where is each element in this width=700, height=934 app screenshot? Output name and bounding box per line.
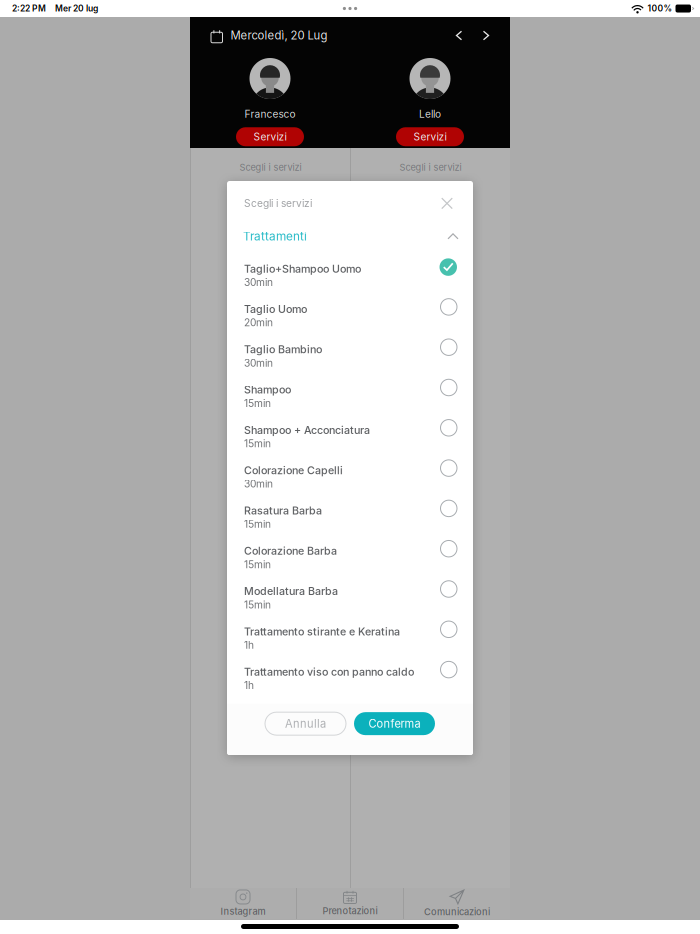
button[interactable]: Trattamenti xyxy=(227,225,473,247)
staticText: 15min xyxy=(244,518,271,530)
button[interactable]: Giorno precedente xyxy=(450,26,468,44)
staticText: Mer 20 lug xyxy=(55,3,98,14)
staticText: Scegli i servizi xyxy=(244,197,312,209)
staticText: Shampoo + Acconciatura xyxy=(244,423,370,436)
staticText: Prenotazioni xyxy=(322,905,377,916)
button[interactable]: Taglio+Shampoo Uomo xyxy=(227,252,473,293)
staticText: Shampoo xyxy=(244,383,291,396)
staticText: Taglio+Shampoo Uomo xyxy=(244,262,361,275)
button[interactable]: Rasatura Barba xyxy=(227,494,473,534)
button[interactable]: Servizi xyxy=(396,127,464,146)
staticText: Trattamento stirante e Keratina xyxy=(244,625,400,638)
staticText: 30min xyxy=(244,478,273,490)
staticText: Servizi xyxy=(413,131,446,143)
staticText: Trattamento viso con panno caldo xyxy=(244,665,414,678)
staticText: 1h xyxy=(244,639,254,651)
button[interactable]: Prenotazioni xyxy=(297,888,403,919)
button[interactable]: Giorno successivo xyxy=(477,26,495,44)
staticText: Taglio Uomo xyxy=(244,303,307,315)
staticText: 30min xyxy=(244,357,273,369)
button[interactable]: Annulla xyxy=(265,712,346,735)
staticText: Conferma xyxy=(368,717,420,730)
staticText: 30min xyxy=(244,276,273,289)
staticText: 15min xyxy=(244,397,271,409)
staticText: Modellatura Barba xyxy=(244,585,338,598)
button[interactable]: Servizi xyxy=(236,127,304,146)
button[interactable]: Taglio Uomo xyxy=(227,293,473,333)
button[interactable]: Modellatura Barba xyxy=(227,575,473,615)
staticText: Servizi xyxy=(253,131,286,143)
staticText: 15min xyxy=(244,558,271,571)
button[interactable]: Colorazione Barba xyxy=(227,534,473,575)
staticText: Taglio Bambino xyxy=(244,343,322,356)
button[interactable]: Comunicazioni xyxy=(404,888,510,919)
staticText: 15min xyxy=(244,437,271,450)
button[interactable]: Taglio Bambino xyxy=(227,333,473,373)
button[interactable]: Trattamento viso con panno caldo xyxy=(227,655,473,696)
button[interactable]: Conferma xyxy=(354,712,435,735)
staticText: Colorazione Barba xyxy=(244,544,337,557)
staticText: 15min xyxy=(244,599,271,611)
staticText: Scegli i servizi xyxy=(239,162,301,173)
staticText: Annulla xyxy=(285,717,326,730)
button[interactable]: Instagram xyxy=(190,888,296,919)
staticText: Scegli i servizi xyxy=(399,162,461,173)
staticText: Trattamenti xyxy=(243,229,307,243)
button[interactable]: Shampoo xyxy=(227,373,473,413)
staticText: Rasatura Barba xyxy=(244,504,322,517)
staticText: Instagram xyxy=(220,906,265,917)
button[interactable]: Trattamento stirante e Keratina xyxy=(227,615,473,655)
staticText: 2:22 PM xyxy=(12,3,46,14)
staticText: Comunicazioni xyxy=(424,906,490,917)
staticText: Colorazione Capelli xyxy=(244,464,343,477)
staticText: Lello xyxy=(419,108,441,120)
button[interactable]: Colorazione Capelli xyxy=(227,454,473,494)
staticText: Mercoledì, 20 Lug xyxy=(230,29,327,42)
staticText: 1h xyxy=(244,679,254,692)
staticText: Francesco xyxy=(244,108,295,120)
button[interactable]: Chiudi xyxy=(436,192,458,214)
staticText: 20min xyxy=(244,317,273,329)
staticText: 100% xyxy=(647,3,672,14)
button[interactable]: Shampoo + Acconciatura xyxy=(227,413,473,454)
